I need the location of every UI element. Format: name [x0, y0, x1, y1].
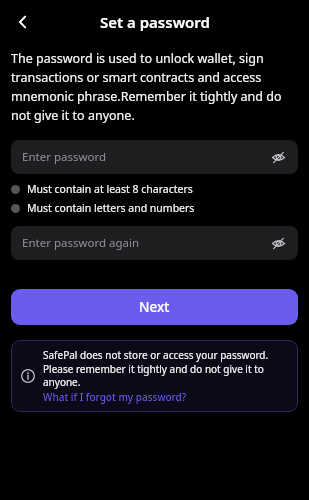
button[interactable]: Show password [267, 146, 289, 168]
staticText: Enter password again [22, 235, 140, 251]
button[interactable]: Show password [267, 232, 289, 254]
staticText: Enter password [22, 149, 107, 165]
staticText: The password is used to unlock wallet, s… [11, 50, 298, 124]
button[interactable]: SafePal does not store or access your pa… [11, 340, 298, 412]
staticText: Next [139, 298, 170, 316]
staticText: Set a password [100, 12, 210, 32]
staticText: SafePal does not store or access your pa… [43, 348, 288, 389]
button[interactable]: Back [6, 5, 40, 39]
button[interactable]: Next [11, 289, 298, 325]
button[interactable]: Must contain at least 8 characters [11, 182, 298, 196]
button[interactable]: Enter password again [11, 226, 298, 260]
staticText: Must contain letters and numbers [27, 201, 195, 215]
button[interactable]: Must contain letters and numbers [11, 201, 298, 215]
button[interactable]: Enter password [11, 140, 298, 174]
staticText: Must contain at least 8 characters [27, 182, 193, 196]
button[interactable]: What if I forgot my password? [43, 390, 187, 404]
